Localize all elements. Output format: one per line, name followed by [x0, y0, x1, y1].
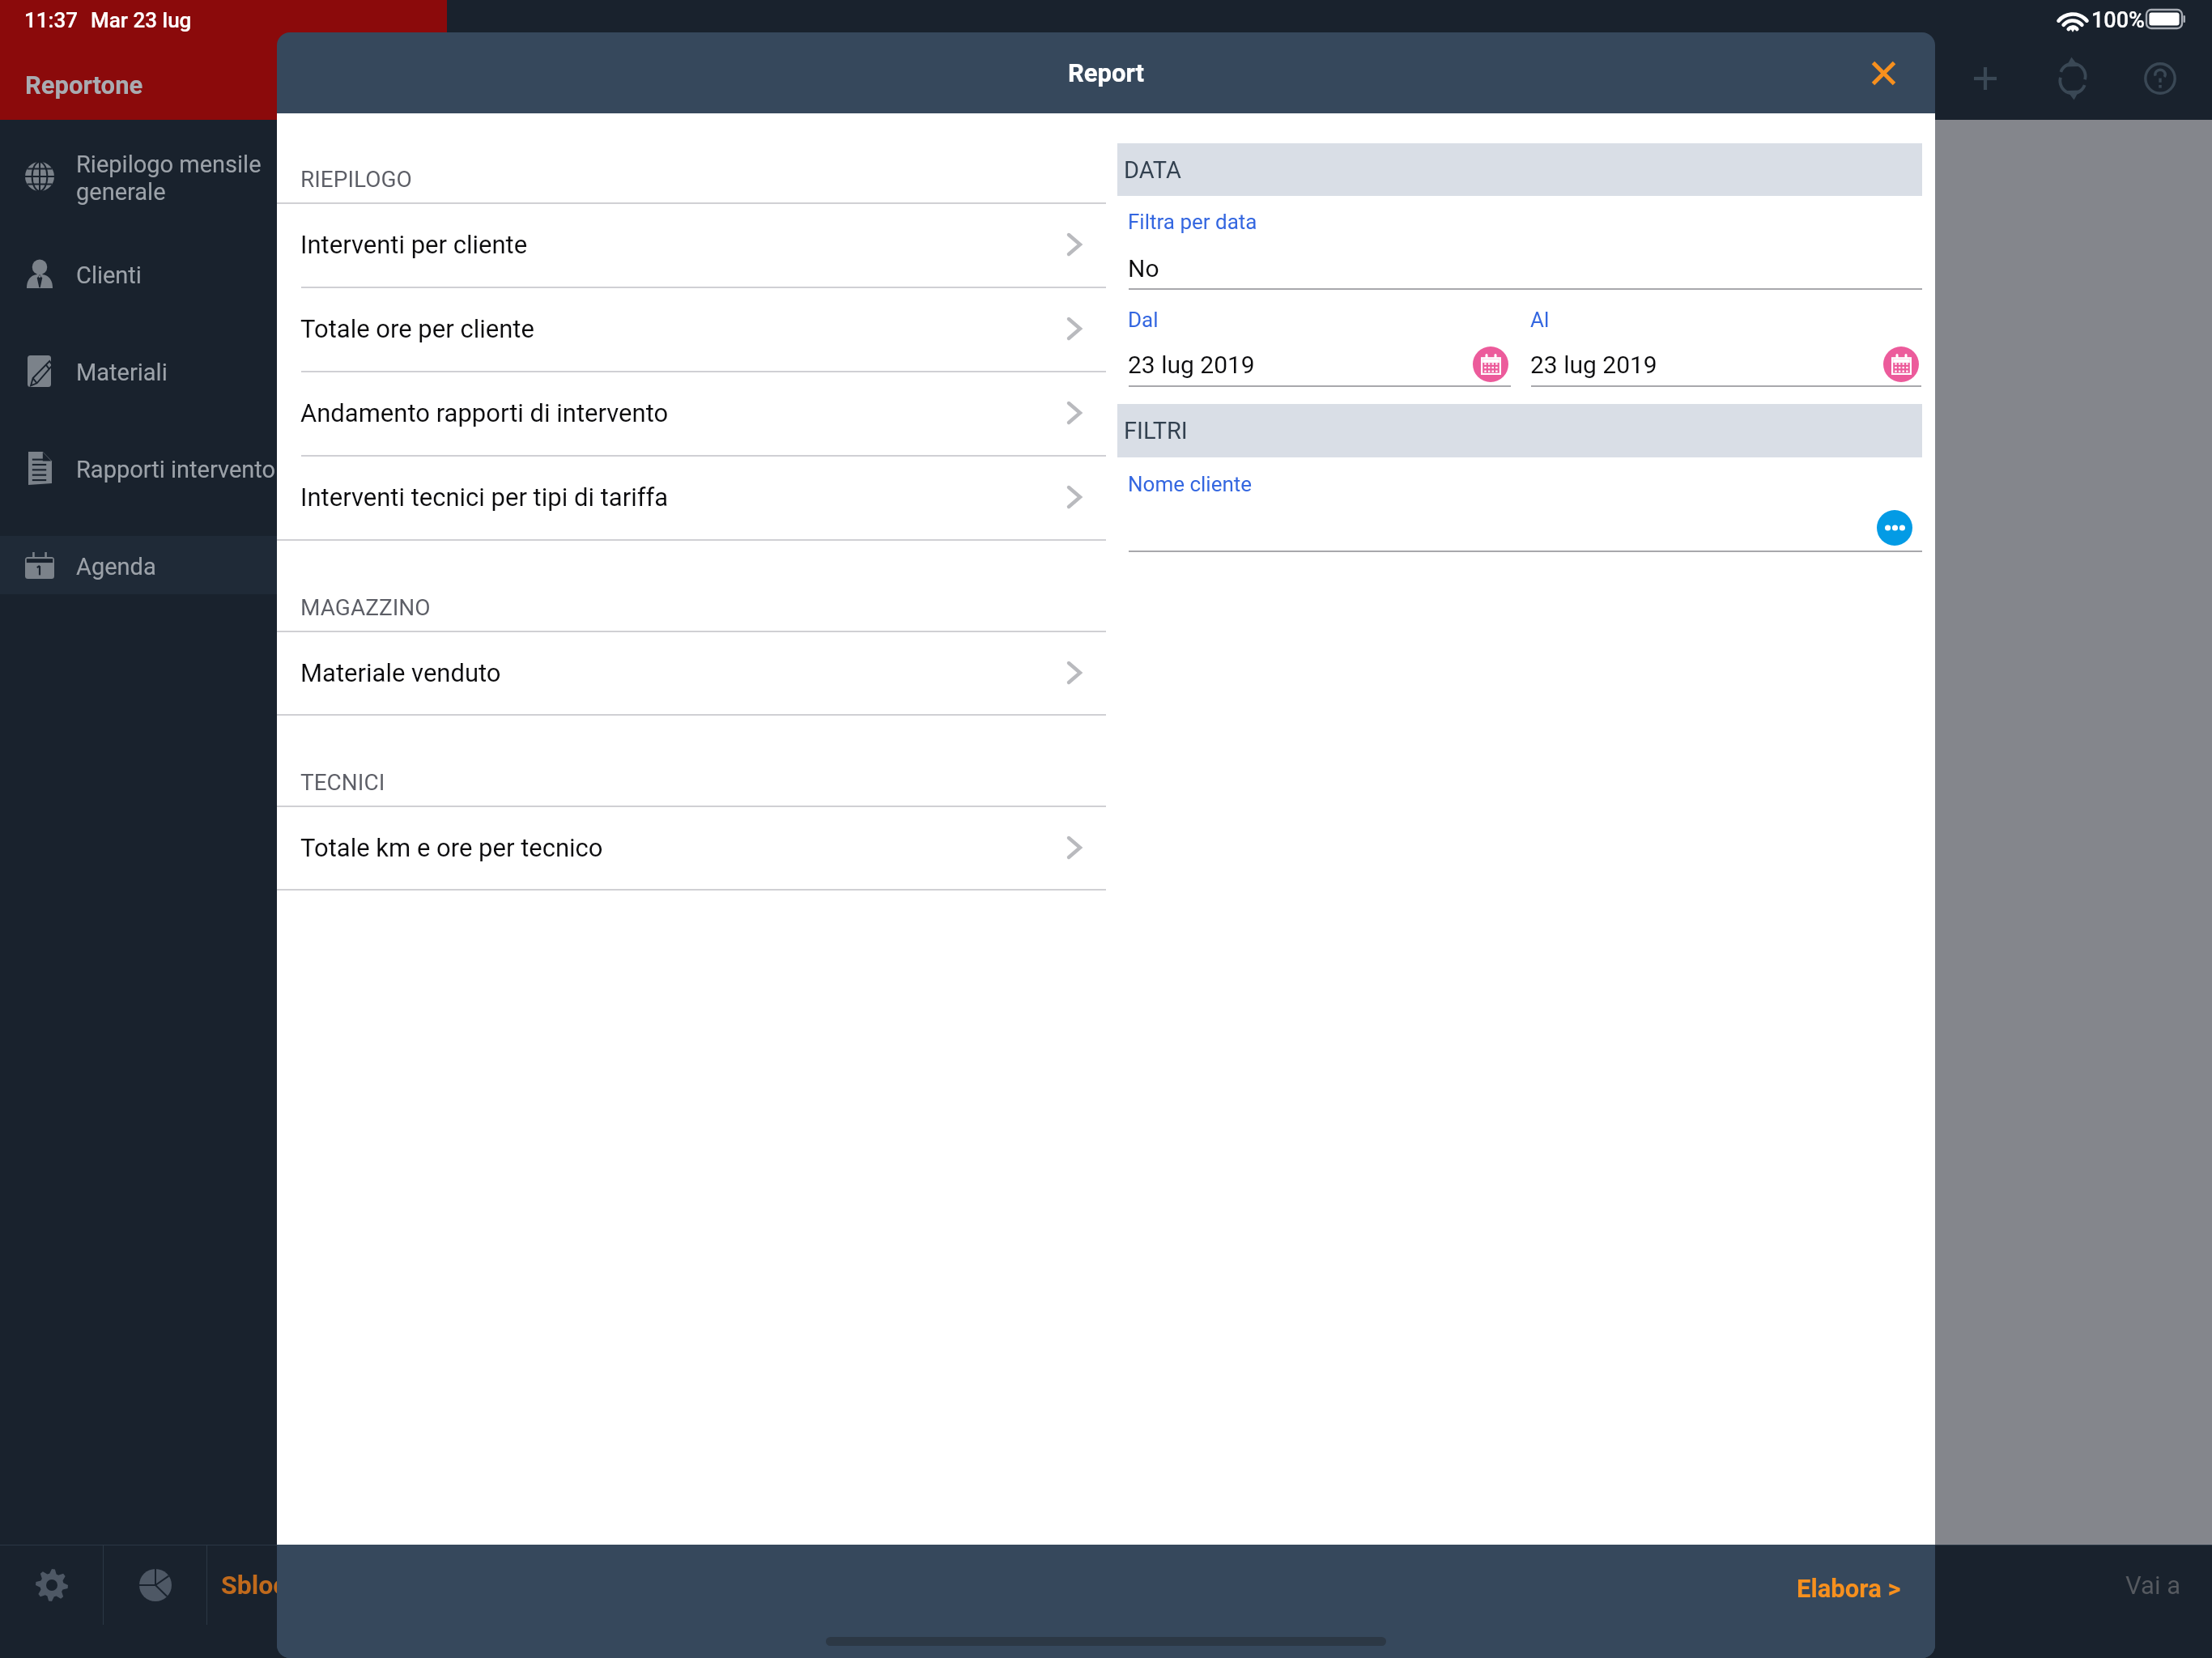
- staticText: Al: [1530, 308, 1550, 332]
- staticText: Elabora >: [1797, 1574, 1901, 1603]
- staticText: 23 lug 2019: [1530, 351, 1657, 379]
- staticText: No: [1128, 254, 1159, 283]
- button[interactable]: Scegli data: [1473, 346, 1508, 382]
- staticText: generale: [76, 178, 166, 206]
- button[interactable]: Materiale venduto: [277, 631, 1106, 714]
- button[interactable]: Totale ore per cliente: [277, 287, 1106, 371]
- button[interactable]: Totale km e ore per tecnico: [277, 806, 1106, 889]
- button[interactable]: Interventi per cliente: [277, 202, 1106, 287]
- button[interactable]: Interventi tecnici per tipi di tariffa: [277, 455, 1106, 539]
- staticText: RIEPILOGO: [300, 166, 412, 193]
- button[interactable]: Scegli data: [1883, 346, 1919, 382]
- button[interactable]: Impostazioni: [0, 1545, 103, 1625]
- button[interactable]: Elabora >: [1739, 1566, 1901, 1611]
- button[interactable]: Statistiche: [104, 1545, 206, 1625]
- button[interactable]: Andamento rapporti di intervento: [277, 371, 1106, 455]
- button[interactable]: Rapporti intervento: [0, 439, 277, 497]
- staticText: Dal: [1128, 308, 1159, 332]
- staticText: 11:37: [24, 8, 79, 32]
- staticText: 100%: [2091, 7, 2145, 33]
- staticText: Interventi per cliente: [300, 230, 528, 259]
- staticText: 23 lug 2019: [1128, 351, 1255, 379]
- button[interactable]: Scegli cliente: [1877, 510, 1912, 546]
- button[interactable]: Riepilogo mensile: [0, 147, 277, 206]
- staticText: TECNICI: [300, 769, 385, 796]
- staticText: Rapporti intervento: [76, 456, 276, 483]
- staticText: DATA: [1124, 156, 1181, 184]
- button[interactable]: Agenda: [0, 536, 277, 594]
- button[interactable]: Materiali: [0, 342, 277, 400]
- staticText: Clienti: [76, 261, 142, 289]
- staticText: Materiali: [76, 359, 168, 386]
- button[interactable]: Sblocca: [207, 1545, 450, 1625]
- staticText: Sblocca: [221, 1570, 314, 1601]
- staticText: Filtra per data: [1128, 210, 1257, 234]
- staticText: Nome cliente: [1128, 472, 1253, 496]
- button[interactable]: Clienti: [0, 244, 277, 303]
- staticText: Mar 23 lug: [91, 8, 192, 32]
- staticText: Materiale venduto: [300, 658, 501, 687]
- staticText: Reportone: [25, 70, 143, 100]
- button[interactable]: Sincronizza: [2037, 43, 2108, 114]
- staticText: Andamento rapporti di intervento: [300, 398, 669, 427]
- staticText: FILTRI: [1124, 417, 1188, 444]
- staticText: Interventi tecnici per tipi di tariffa: [300, 483, 669, 512]
- staticText: Riepilogo mensile: [76, 151, 262, 178]
- button[interactable]: Aiuto: [2125, 43, 2196, 114]
- staticText: MAGAZZINO: [300, 594, 431, 621]
- button[interactable]: Chiudi: [1862, 52, 1904, 94]
- staticText: Vai a: [2125, 1571, 2180, 1600]
- staticText: Agenda: [76, 553, 156, 580]
- staticText: Totale ore per cliente: [300, 314, 534, 343]
- staticText: Totale km e ore per tecnico: [300, 833, 603, 862]
- button[interactable]: Aggiungi: [1950, 43, 2021, 114]
- staticText: Report: [1068, 58, 1145, 87]
- button[interactable]: Vai a: [2048, 1545, 2212, 1625]
